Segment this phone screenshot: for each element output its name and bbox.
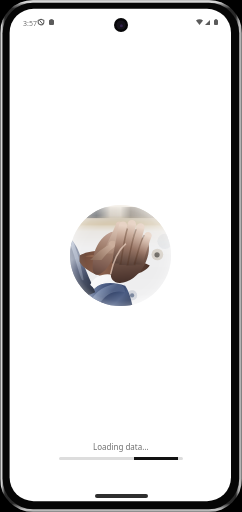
other: Front camera bbox=[114, 18, 128, 32]
other: Battery saver bbox=[49, 19, 54, 25]
staticText: 3:57 bbox=[23, 19, 37, 29]
other: VPN bbox=[38, 19, 44, 25]
staticText: Loading data… bbox=[93, 441, 149, 452]
button[interactable] bbox=[95, 494, 148, 498]
